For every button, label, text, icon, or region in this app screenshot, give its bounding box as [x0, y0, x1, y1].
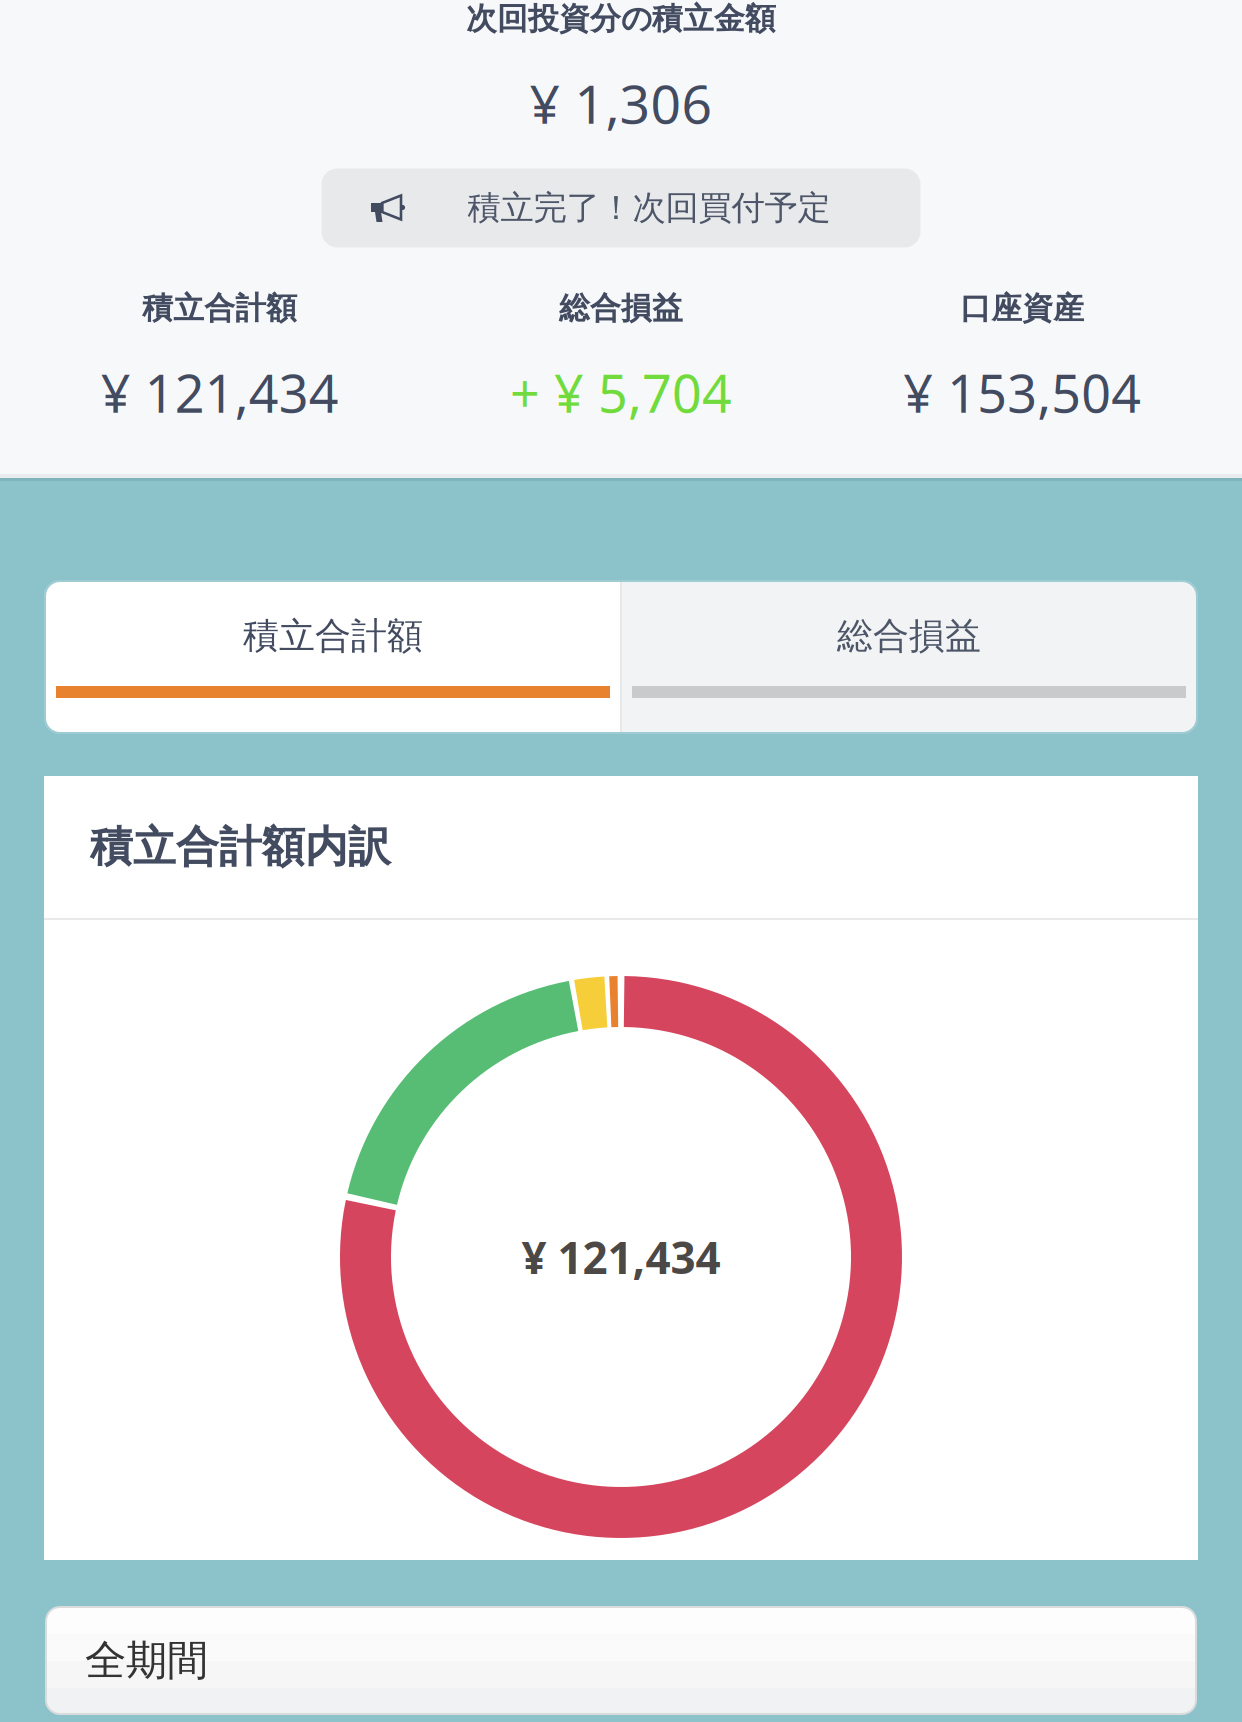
staticText: ¥ 121,434: [101, 358, 339, 427]
staticText: 積立合計額: [243, 614, 423, 658]
staticText: 総合損益: [559, 289, 683, 327]
staticText: 積立完了！次回買付予定: [467, 187, 830, 228]
staticText: 口座資産: [960, 289, 1084, 327]
staticText: ¥ 153,504: [903, 358, 1141, 427]
button[interactable]: 総合損益: [622, 582, 1196, 732]
staticText: + ¥ 5,704: [510, 358, 732, 427]
staticText: 総合損益: [837, 614, 981, 658]
button[interactable]: 全期間: [46, 1607, 1196, 1714]
staticText: ¥ 121,434: [521, 1228, 720, 1286]
staticText: 次回投資分の積立金額: [466, 0, 776, 38]
staticText: 全期間: [85, 1635, 208, 1686]
staticText: ¥ 1,306: [529, 68, 712, 138]
button[interactable]: 積立完了！次回買付予定: [321, 168, 920, 247]
button[interactable]: 積立合計額: [46, 582, 620, 732]
staticText: 積立合計額: [142, 289, 297, 327]
staticText: 積立合計額内訳: [90, 821, 391, 873]
